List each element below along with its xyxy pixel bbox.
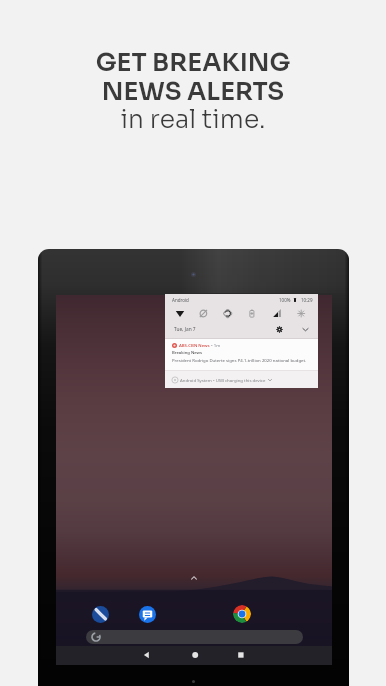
staticText: 10:29 [301, 297, 313, 303]
button[interactable]: Expand [301, 325, 310, 334]
button[interactable]: Settings [275, 325, 284, 334]
button[interactable]: Quick settings [165, 306, 318, 321]
staticText: Breaking News [172, 350, 202, 356]
staticText: Android System • USB charging this devic… [180, 377, 266, 383]
button[interactable]: Phone [92, 606, 109, 623]
staticText: NEWS ALERTS [0, 76, 386, 108]
staticText: 100% [279, 297, 291, 303]
staticText: GET BREAKING [0, 47, 386, 79]
button[interactable]: ABS-CBN News [165, 339, 318, 370]
button[interactable]: Search [86, 630, 303, 644]
staticText: in real time. [0, 104, 386, 136]
button[interactable]: Back [139, 646, 155, 665]
staticText: President Rodrigo Duterte signs P4.1-tri… [172, 357, 307, 363]
button[interactable]: Messages [139, 606, 156, 623]
staticText: Tue, Jan 7 [174, 326, 196, 333]
button[interactable]: Android System • USB charging this devic… [165, 371, 318, 388]
staticText: ABS-CBN News [179, 342, 210, 348]
button[interactable]: Chrome [233, 605, 251, 623]
staticText: • 1m [211, 342, 221, 348]
staticText: Android [172, 297, 189, 303]
